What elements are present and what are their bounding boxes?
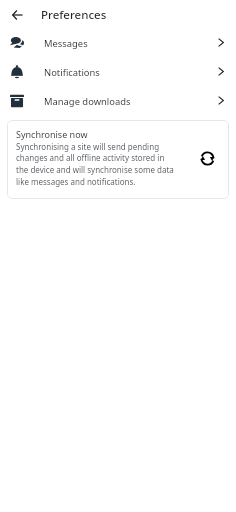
button[interactable]: Synchronise xyxy=(194,145,220,171)
button[interactable]: Synchronise now xyxy=(7,120,229,199)
staticText: Preferences xyxy=(41,7,107,23)
staticText: Synchronising a site will send pending c… xyxy=(16,141,176,188)
staticText: Messages xyxy=(44,37,88,50)
staticText: Manage downloads xyxy=(44,95,131,108)
staticText: Synchronise now xyxy=(16,128,88,140)
button[interactable]: Messages xyxy=(0,29,236,58)
button[interactable]: Notifications xyxy=(0,58,236,87)
staticText: Notifications xyxy=(44,66,100,79)
button[interactable]: Back xyxy=(5,2,30,27)
button[interactable]: Manage downloads xyxy=(0,87,236,116)
